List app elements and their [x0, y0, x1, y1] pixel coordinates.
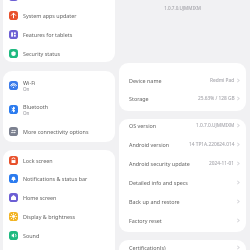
button[interactable]: Certification(s)	[119, 238, 246, 250]
staticText: Wi-Fi	[23, 79, 36, 86]
button[interactable]: Android security update	[119, 154, 246, 173]
button[interactable]: Home screen	[3, 188, 115, 207]
button[interactable]: Android version	[119, 135, 246, 154]
staticText: On	[23, 86, 30, 92]
button[interactable]: Device name	[119, 71, 246, 90]
staticText: On	[23, 110, 30, 116]
button[interactable]: Storage	[119, 89, 246, 108]
staticText: Android version	[129, 141, 170, 148]
staticText: Notifications & status bar	[23, 175, 88, 182]
staticText: Bluetooth	[23, 103, 49, 110]
staticText: 1.0.7.0.UJMMIXM	[196, 122, 235, 129]
button[interactable]: Factory reset	[119, 211, 246, 230]
button[interactable]: Sound	[3, 226, 115, 245]
staticText: 2024-11-01	[209, 160, 235, 167]
staticText: Device name	[129, 77, 162, 84]
button[interactable]: Lock screen	[3, 151, 115, 170]
staticText: More connectivity options	[23, 128, 89, 135]
staticText: Security status	[23, 50, 61, 57]
button[interactable]: More connectivity options	[3, 122, 115, 141]
button[interactable]: Bluetooth	[3, 100, 115, 119]
staticText: Factory reset	[129, 217, 162, 224]
button[interactable]: OS version	[119, 116, 246, 135]
staticText: OS version	[129, 122, 157, 129]
staticText: 25.63% / 128 GB	[198, 95, 235, 102]
button[interactable]: Back up and restore	[119, 192, 246, 211]
button[interactable]: Security status	[3, 44, 115, 63]
staticText: Home screen	[23, 194, 57, 201]
staticText: Lock screen	[23, 157, 53, 164]
staticText: Features for tablets	[23, 31, 73, 38]
staticText: Sound	[23, 232, 40, 239]
button[interactable]: Detailed info and specs	[119, 173, 246, 192]
staticText: Display & brightness	[23, 213, 76, 220]
button[interactable]: Features for tablets	[3, 25, 115, 44]
staticText: 1.0.7.0.UJMMIXM	[119, 5, 246, 11]
button[interactable]: Display & brightness	[3, 207, 115, 226]
button[interactable]: Notifications & status bar	[3, 169, 115, 188]
staticText: Redmi Pad	[210, 77, 235, 84]
button[interactable]: Wi-Fi	[3, 76, 115, 95]
staticText: Certification(s)	[129, 244, 166, 250]
button[interactable]: Updates	[3, 0, 115, 6]
staticText: Back up and restore	[129, 198, 180, 205]
staticText: Storage	[129, 95, 149, 102]
staticText: System apps updater	[23, 12, 77, 19]
staticText: Detailed info and specs	[129, 179, 188, 186]
button[interactable]: System apps updater	[3, 6, 115, 25]
staticText: Android security update	[129, 160, 190, 167]
staticText: 14 TP1A.220624.014	[189, 141, 235, 148]
